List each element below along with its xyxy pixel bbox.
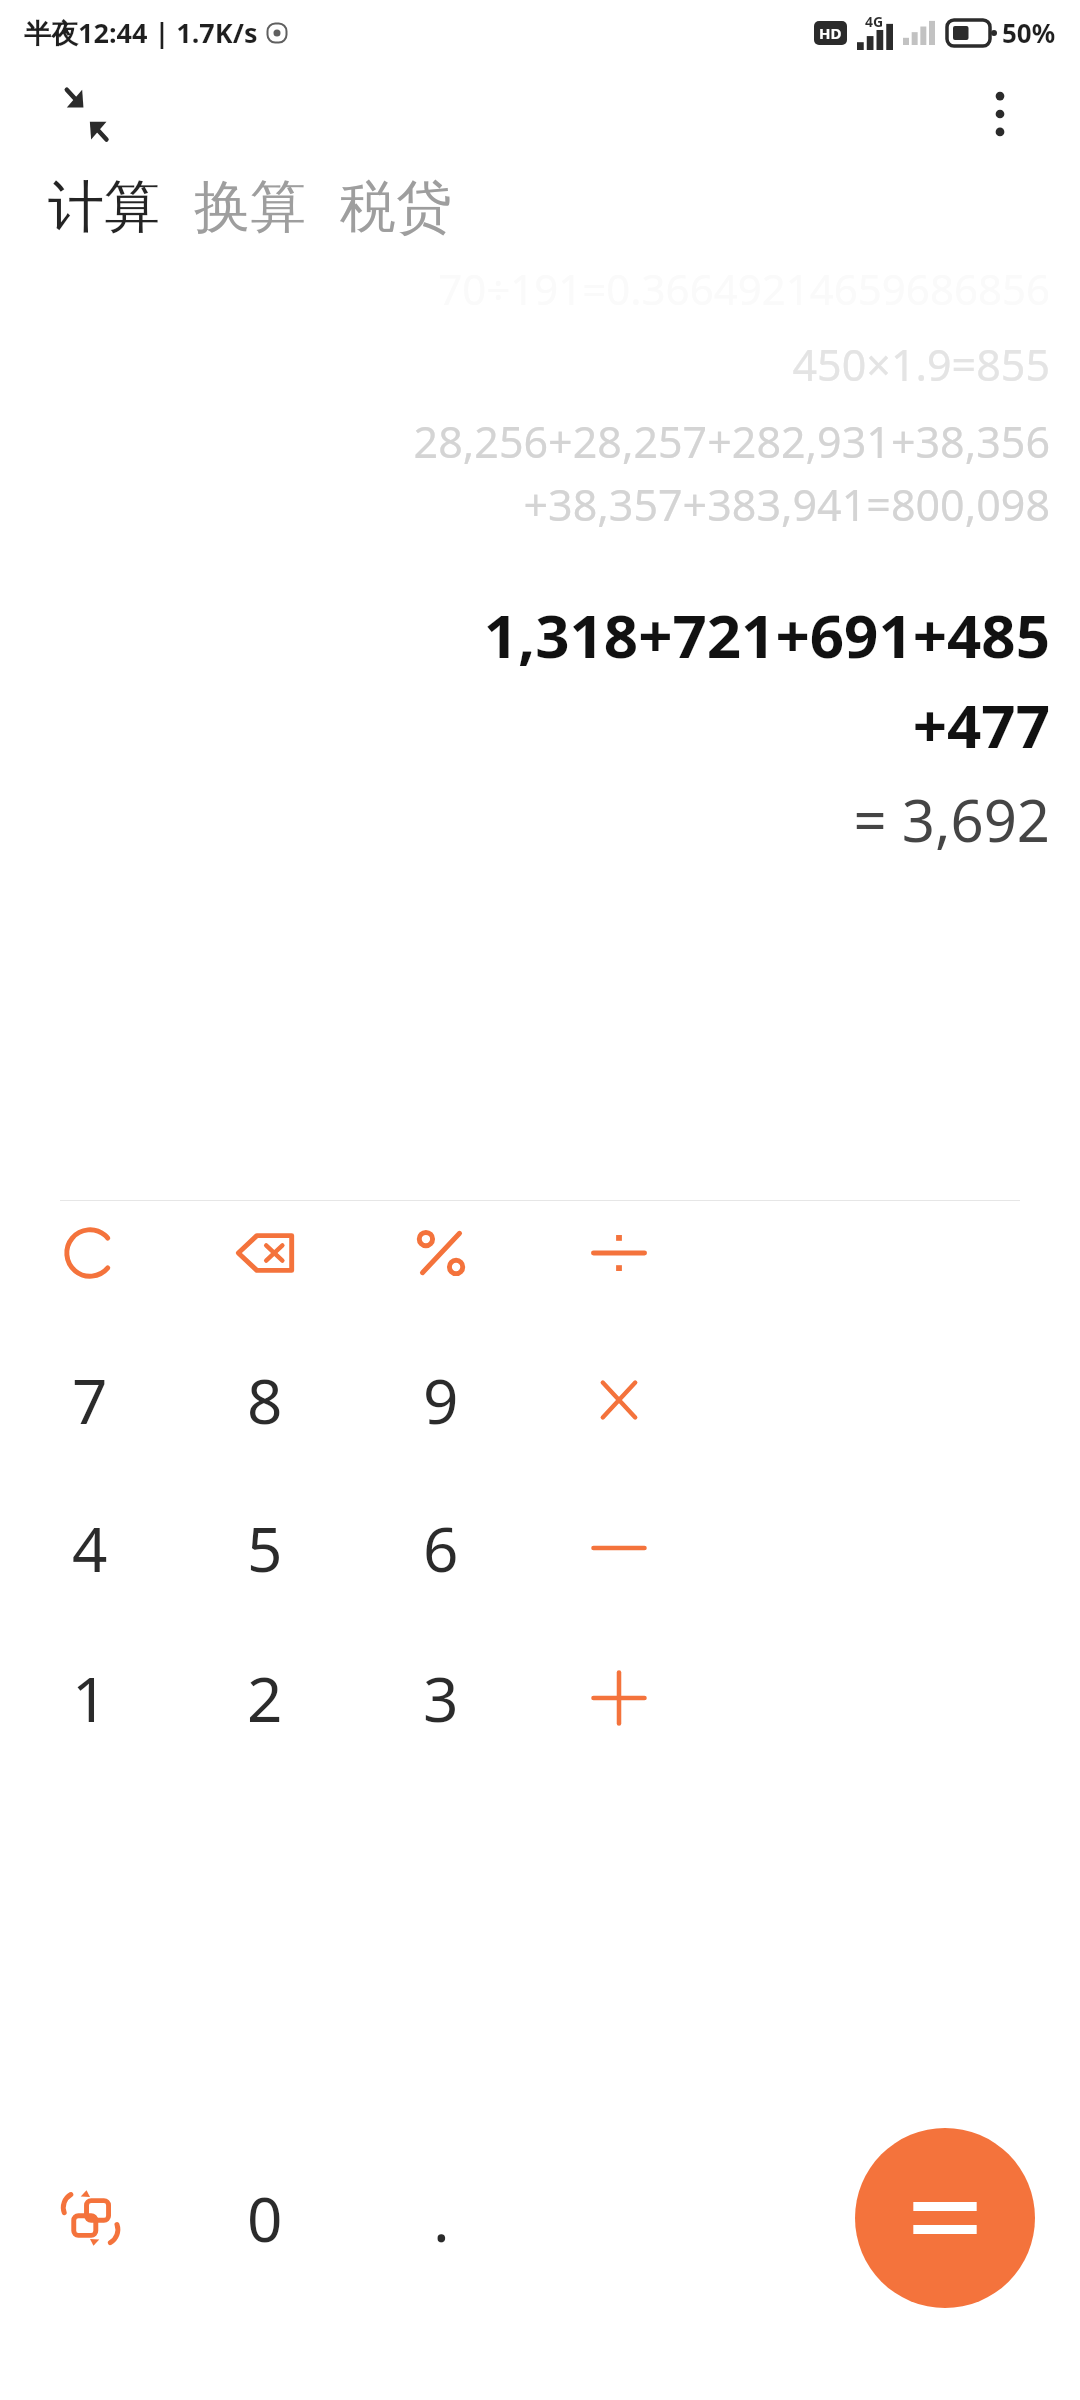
button[interactable]: Equals	[855, 2128, 1035, 2308]
button[interactable]: Clear	[15, 1178, 165, 1328]
staticText: 换算	[194, 172, 306, 243]
staticText: 2	[247, 1656, 283, 1740]
button[interactable]: 5	[190, 1473, 340, 1623]
button[interactable]: 换算	[190, 168, 310, 247]
staticText: 50%	[1002, 15, 1056, 50]
button[interactable]: Divide	[544, 1178, 694, 1328]
button[interactable]: .	[366, 2143, 516, 2293]
staticText: +477	[30, 684, 1050, 766]
staticText: 计算	[48, 172, 160, 243]
staticText: +38,357+383,941=800,098	[30, 475, 1050, 534]
button[interactable]: 6	[366, 1473, 516, 1623]
staticText: 0	[247, 2176, 283, 2260]
button[interactable]: More options	[968, 82, 1032, 146]
button[interactable]: 3	[366, 1623, 516, 1773]
staticText: 半夜12:44 | 1.7K/s	[24, 14, 258, 51]
staticText: 4G	[865, 12, 884, 31]
staticText: 1,318+721+691+485	[30, 594, 1050, 676]
button[interactable]: Percent	[366, 1178, 516, 1328]
button[interactable]: Multiply	[544, 1325, 694, 1475]
button[interactable]: 8	[190, 1325, 340, 1475]
button[interactable]: 9	[366, 1325, 516, 1475]
staticText: 7	[72, 1358, 108, 1442]
staticText: 税贷	[340, 172, 452, 243]
button[interactable]: 计算	[44, 168, 164, 247]
button[interactable]: Subtract	[544, 1473, 694, 1623]
staticText: 4	[72, 1506, 108, 1590]
staticText: 450×1.9=855	[30, 335, 1050, 394]
staticText: .	[433, 2176, 450, 2260]
button[interactable]: 2	[190, 1623, 340, 1773]
staticText: = 3,692	[30, 780, 1050, 859]
staticText: 9	[423, 1358, 459, 1442]
button[interactable]: 1	[15, 1623, 165, 1773]
staticText: 5	[247, 1506, 283, 1590]
button[interactable]: 4	[15, 1473, 165, 1623]
button[interactable]: Add	[544, 1623, 694, 1773]
staticText: 8	[247, 1358, 283, 1442]
staticText: 6	[423, 1506, 459, 1590]
button[interactable]: 0	[190, 2143, 340, 2293]
button[interactable]: Convert units	[15, 2143, 165, 2293]
button[interactable]: 7	[15, 1325, 165, 1475]
staticText: 1	[72, 1656, 108, 1740]
staticText: 3	[423, 1656, 459, 1740]
button[interactable]: Collapse	[54, 82, 118, 146]
button[interactable]: Backspace	[190, 1178, 340, 1328]
button[interactable]: 税贷	[336, 168, 456, 247]
staticText: 28,256+28,257+282,931+38,356	[30, 412, 1050, 471]
staticText: HD	[819, 23, 842, 43]
